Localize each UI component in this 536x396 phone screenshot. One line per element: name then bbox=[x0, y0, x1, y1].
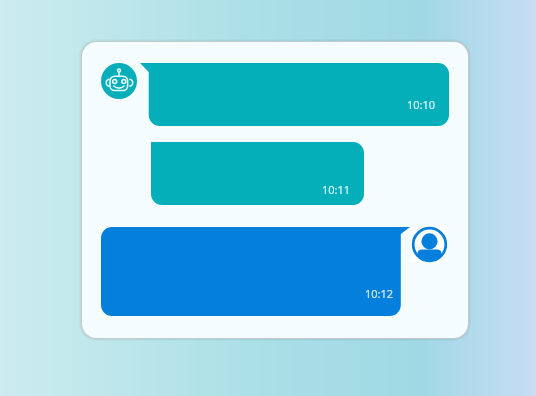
staticText: 10:10 bbox=[407, 97, 436, 112]
button[interactable] bbox=[101, 227, 410, 316]
button[interactable] bbox=[140, 63, 449, 126]
staticText: 10:12 bbox=[365, 286, 394, 301]
staticText: 10:11 bbox=[322, 182, 351, 197]
button[interactable]: Assistant avatar bbox=[101, 63, 137, 99]
button[interactable]: Your avatar bbox=[411, 227, 448, 262]
button[interactable] bbox=[151, 142, 364, 205]
